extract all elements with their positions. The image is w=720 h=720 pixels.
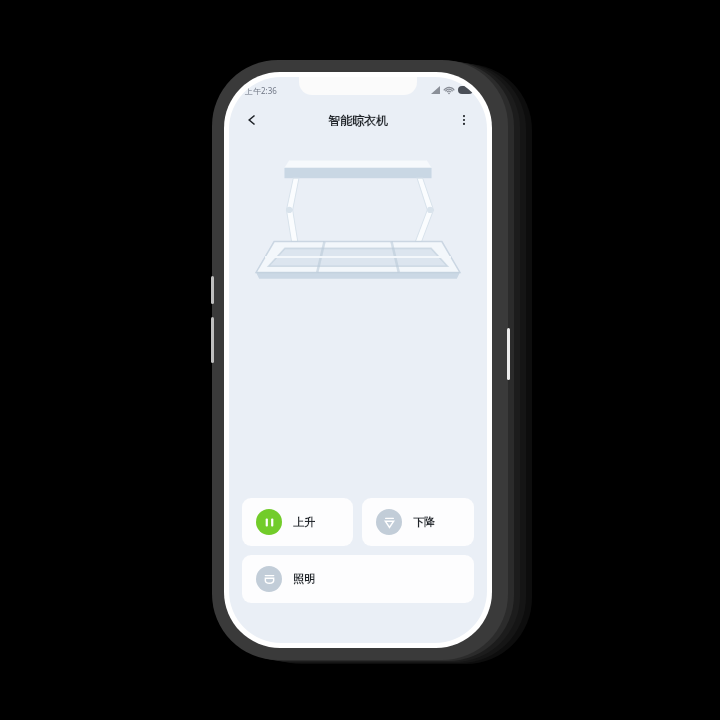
staticText: 照明: [293, 572, 315, 586]
staticText: 上午2:36: [245, 85, 277, 96]
button[interactable]: 照明: [242, 555, 474, 603]
button[interactable]: 下降: [362, 498, 474, 546]
button[interactable]: Back: [235, 103, 269, 137]
staticText: 下降: [413, 515, 435, 529]
staticText: 上升: [293, 515, 315, 529]
button[interactable]: More options: [447, 103, 481, 137]
button[interactable]: 上升: [242, 498, 353, 546]
staticText: 智能晾衣机: [328, 113, 388, 128]
